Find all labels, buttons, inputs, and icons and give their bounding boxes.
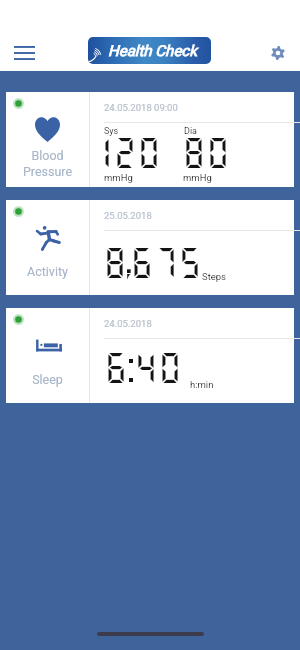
button[interactable]: Blood Pressure [6, 92, 294, 187]
staticText: 80 [182, 133, 230, 172]
staticText: Activity [6, 264, 89, 279]
staticText: 25.05.2018 [104, 210, 152, 221]
staticText: Health Check [108, 42, 197, 60]
staticText: h:min [190, 379, 214, 390]
button[interactable]: Activity [6, 200, 294, 295]
staticText: mmHg [104, 172, 133, 183]
staticText: 40 [134, 348, 182, 387]
staticText: mmHg [183, 172, 212, 183]
staticText: Blood Pressure [6, 148, 89, 179]
staticText: Sleep [6, 372, 89, 387]
button[interactable]: Health Check [88, 37, 211, 64]
staticText: Dia [184, 126, 197, 137]
button[interactable]: Open navigation menu [2, 34, 45, 68]
staticText: 24.05.2018 [104, 318, 152, 329]
staticText: 120 [89, 133, 161, 172]
button[interactable]: Settings [262, 35, 294, 67]
staticText: 6 [104, 348, 128, 387]
staticText: 8,675 [103, 243, 202, 282]
staticText: Sys [104, 126, 119, 137]
staticText: 24.05.2018 09:00 [104, 102, 178, 113]
staticText: Steps [202, 271, 227, 282]
button[interactable]: Sleep [6, 308, 294, 403]
